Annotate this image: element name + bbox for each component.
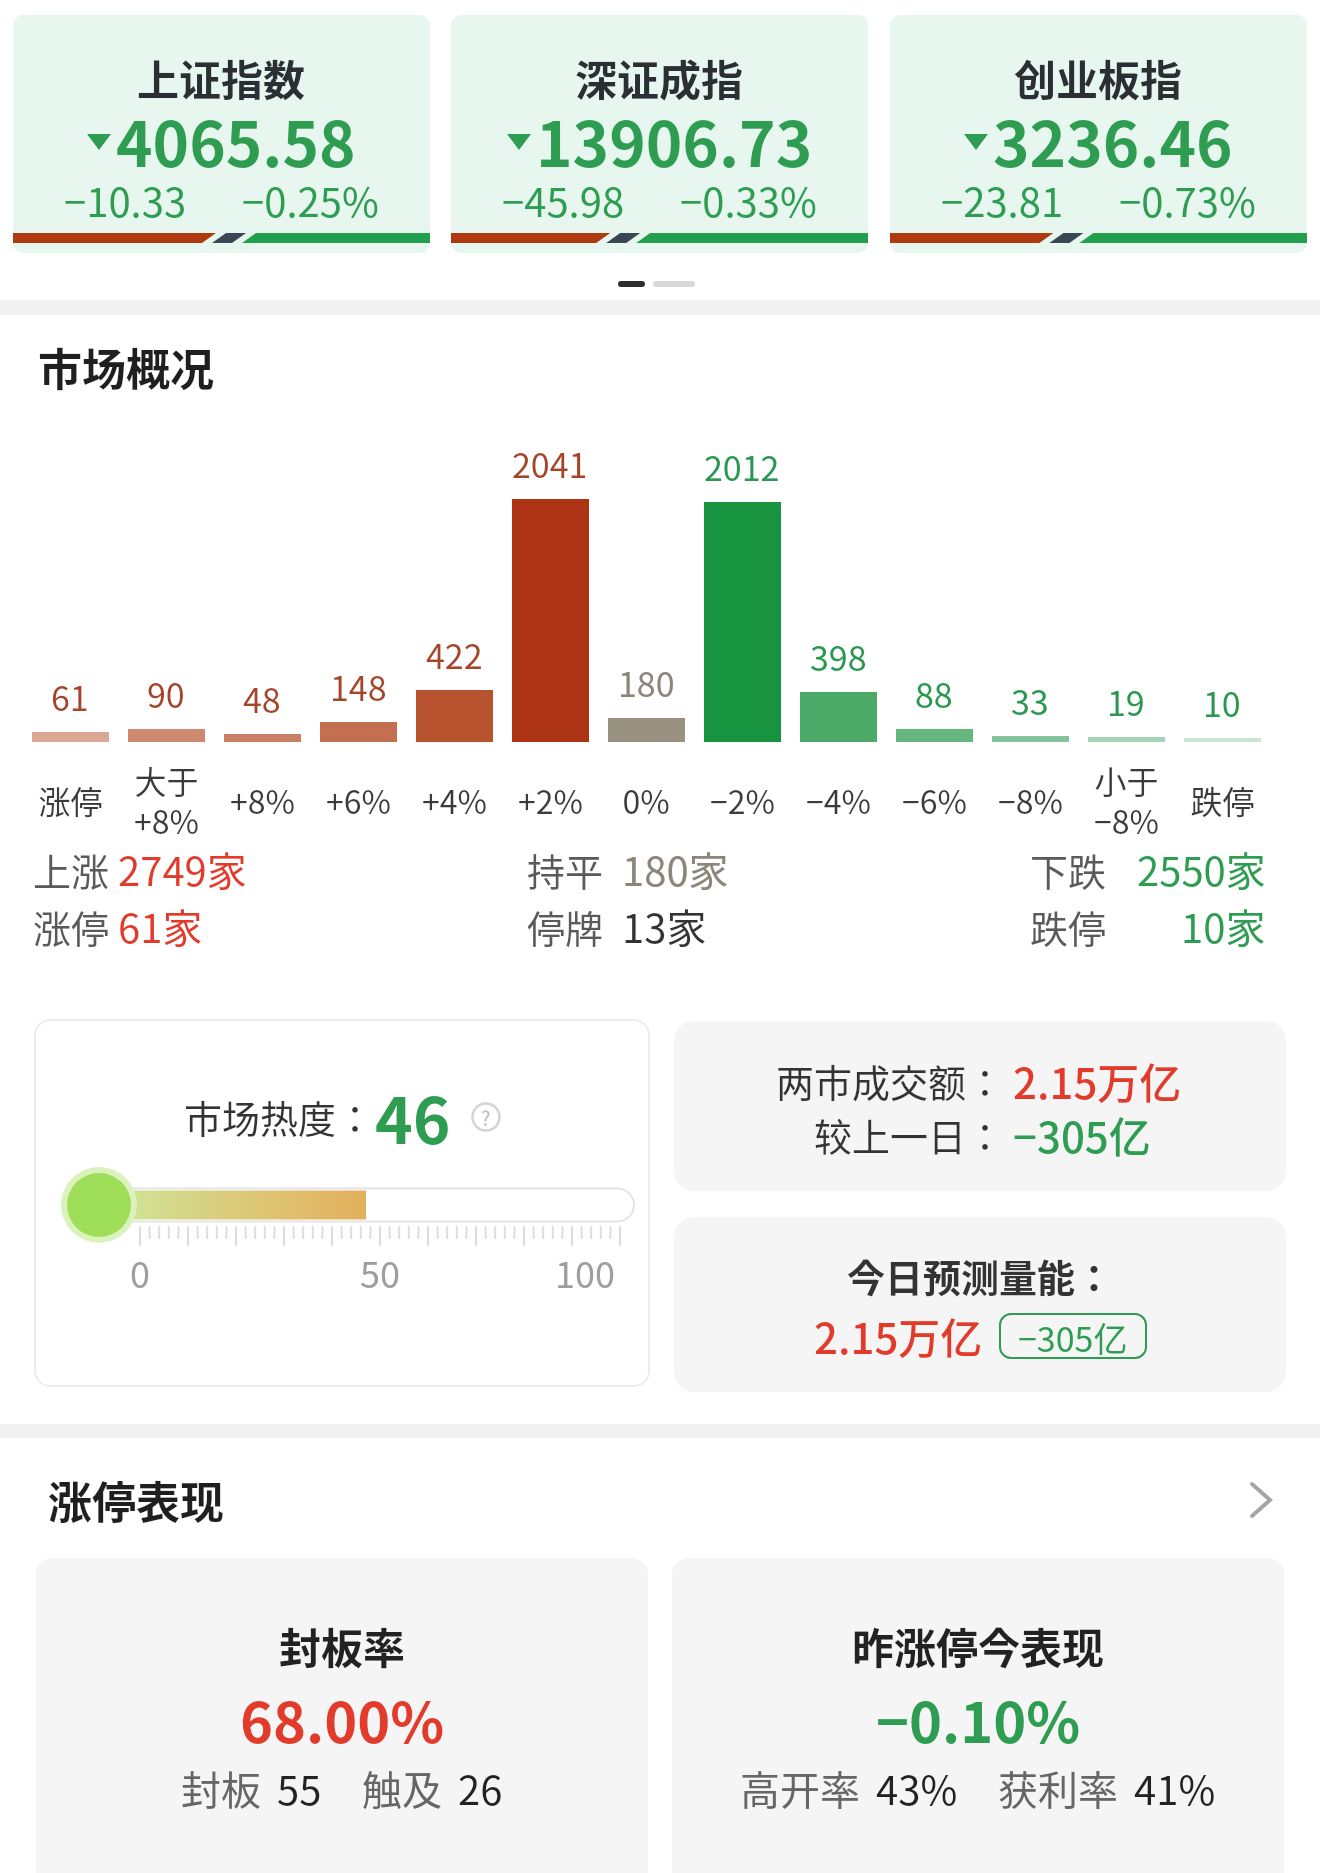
staticText: 19 <box>1107 677 1145 726</box>
staticText: 55 <box>277 1759 322 1817</box>
staticText: +8% <box>230 777 295 823</box>
staticText: −0.33% <box>680 171 817 229</box>
button[interactable]: 创业板指 <box>890 15 1307 253</box>
staticText: 涨停表现 <box>48 1468 224 1532</box>
staticText: 10家 <box>1181 897 1266 955</box>
staticText: 今日预测量能： <box>847 1248 1114 1303</box>
staticText: 4065.58 <box>116 95 356 185</box>
staticText: −2% <box>710 777 775 823</box>
staticText: 下跌 <box>1030 842 1107 897</box>
staticText: −45.98 <box>502 171 625 229</box>
staticText: 获利率 <box>998 1759 1118 1817</box>
staticText: 涨停 <box>33 899 110 954</box>
staticText: ? <box>481 1103 491 1132</box>
staticText: 43% <box>876 1759 958 1817</box>
staticText: 上证指数 <box>137 47 306 108</box>
staticText: 180 <box>618 658 675 707</box>
staticText: 小于 −8% <box>1094 757 1159 843</box>
button[interactable]: 今日预测量能： <box>674 1217 1286 1392</box>
staticText: 停牌 <box>527 899 604 954</box>
staticText: 50 <box>360 1246 400 1298</box>
staticText: 2.15万亿 <box>814 1305 983 1366</box>
staticText: −0.25% <box>242 171 379 229</box>
staticText: 422 <box>426 630 483 679</box>
staticText: 10 <box>1203 678 1241 727</box>
staticText: 上涨 <box>33 842 110 897</box>
staticText: 0% <box>622 777 670 823</box>
staticText: −10.33 <box>64 171 187 229</box>
staticText: 3236.46 <box>993 95 1233 185</box>
staticText: 封板率 <box>279 1615 406 1676</box>
staticText: 61家 <box>118 897 203 955</box>
staticText: 180家 <box>622 840 729 898</box>
staticText: 148 <box>330 662 387 711</box>
staticText: 市场概况 <box>38 335 214 399</box>
button[interactable]: 两市成交额： <box>674 1021 1286 1191</box>
staticText: 48 <box>243 674 281 723</box>
staticText: 市场热度： <box>184 1089 375 1144</box>
staticText: −0.10% <box>876 1678 1081 1759</box>
button[interactable]: 深证成指 <box>451 15 868 253</box>
button[interactable]: 封板率 <box>36 1558 648 1873</box>
staticText: 100 <box>555 1246 615 1298</box>
staticText: −6% <box>902 777 967 823</box>
staticText: +2% <box>518 777 583 823</box>
staticText: 持平 <box>527 842 604 897</box>
staticText: 2012 <box>704 442 780 491</box>
staticText: 33 <box>1011 676 1049 725</box>
staticText: 深证成指 <box>575 47 744 108</box>
staticText: 398 <box>810 632 867 681</box>
staticText: 跌停 <box>1190 777 1255 823</box>
staticText: 2.15万亿 <box>1013 1050 1182 1111</box>
staticText: 61 <box>51 672 89 721</box>
staticText: 高开率 <box>740 1759 860 1817</box>
button[interactable] <box>1244 1482 1280 1518</box>
staticText: 触及 <box>362 1759 442 1817</box>
staticText: 13家 <box>622 897 707 955</box>
staticText: 封板 <box>181 1759 261 1817</box>
staticText: 88 <box>915 669 953 718</box>
staticText: −8% <box>998 777 1063 823</box>
staticText: 2550家 <box>1137 840 1266 898</box>
staticText: 创业板指 <box>1014 47 1183 108</box>
staticText: 41% <box>1134 1759 1216 1817</box>
staticText: 两市成交额： <box>776 1053 1005 1108</box>
staticText: 昨涨停今表现 <box>852 1615 1105 1676</box>
staticText: −305亿 <box>1018 1313 1128 1359</box>
button[interactable]: 上证指数 <box>13 15 430 253</box>
staticText: 26 <box>458 1759 503 1817</box>
staticText: +6% <box>326 777 391 823</box>
staticText: 68.00% <box>240 1678 445 1759</box>
staticText: 13906.73 <box>536 95 813 185</box>
staticText: 大于 +8% <box>134 757 199 843</box>
staticText: 跌停 <box>1030 899 1107 954</box>
staticText: −4% <box>806 777 871 823</box>
staticText: 2041 <box>512 439 588 488</box>
staticText: 46 <box>375 1070 451 1163</box>
staticText: −0.73% <box>1119 171 1256 229</box>
staticText: −23.81 <box>941 171 1064 229</box>
button[interactable]: 市场热度： <box>34 1019 650 1387</box>
staticText: 2749家 <box>118 840 247 898</box>
staticText: −305亿 <box>1013 1104 1151 1165</box>
staticText: 较上一日： <box>814 1107 1005 1162</box>
staticText: 90 <box>147 669 185 718</box>
staticText: 涨停 <box>38 777 103 823</box>
staticText: +4% <box>422 777 487 823</box>
button[interactable]: 昨涨停今表现 <box>672 1558 1284 1873</box>
staticText: 0 <box>130 1246 150 1298</box>
